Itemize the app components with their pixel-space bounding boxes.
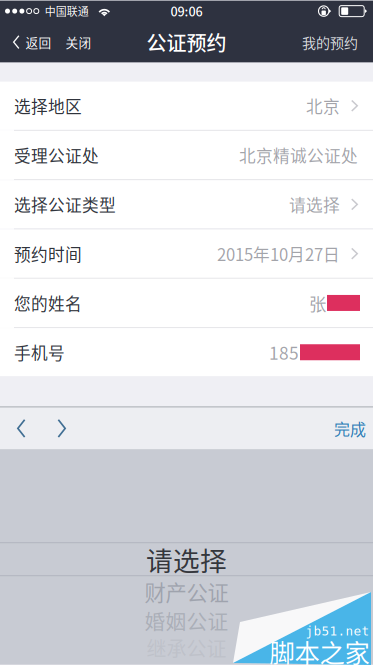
staticText: 完成 bbox=[334, 417, 366, 440]
staticText: 婚姻公证 bbox=[144, 605, 228, 635]
staticText: jb51.net bbox=[305, 624, 369, 638]
button[interactable]: 手机号 bbox=[0, 328, 373, 376]
button[interactable]: 受理公证处 bbox=[0, 131, 373, 179]
staticText: 2015年10月27日 bbox=[217, 242, 340, 266]
staticText: 请选择 bbox=[289, 192, 340, 216]
button[interactable]: 返回 bbox=[0, 22, 58, 63]
staticText: 北京精诚公证处 bbox=[239, 143, 358, 167]
button[interactable]: 完成 bbox=[334, 407, 373, 449]
button[interactable]: Previous field bbox=[0, 407, 41, 449]
staticText: 09:06 bbox=[170, 2, 202, 20]
staticText: 请选择 bbox=[146, 540, 227, 579]
staticText: 北京 bbox=[306, 94, 340, 118]
button[interactable]: 预约时间 bbox=[0, 229, 373, 278]
button[interactable]: 您的姓名 bbox=[0, 279, 373, 327]
button[interactable]: 选择地区 bbox=[0, 82, 373, 130]
staticText: 返回 bbox=[25, 33, 51, 51]
staticText: 财产公证 bbox=[144, 576, 228, 607]
staticText: 我的预约 bbox=[302, 32, 358, 52]
button[interactable]: Next field bbox=[41, 407, 82, 449]
staticText: 继承公证 bbox=[146, 633, 226, 662]
staticText: 预约时间 bbox=[14, 242, 82, 266]
staticText: 选择公证类型 bbox=[14, 192, 116, 216]
button[interactable]: 关闭 bbox=[58, 22, 98, 63]
staticText: 脚本之家 bbox=[269, 633, 369, 665]
staticText: 选择地区 bbox=[14, 94, 82, 118]
staticText: 公证预约 bbox=[146, 28, 226, 57]
staticText: 关闭 bbox=[65, 33, 91, 51]
staticText: 手机号 bbox=[14, 340, 65, 364]
staticText: 您的姓名 bbox=[14, 291, 82, 315]
staticText: 张 bbox=[309, 290, 326, 315]
button[interactable]: 我的预约 bbox=[302, 22, 373, 63]
staticText: 185 bbox=[269, 340, 299, 365]
button[interactable]: 选择公证类型 bbox=[0, 180, 373, 228]
staticText: 中国联通 bbox=[45, 3, 89, 19]
staticText: 受理公证处 bbox=[14, 143, 99, 167]
